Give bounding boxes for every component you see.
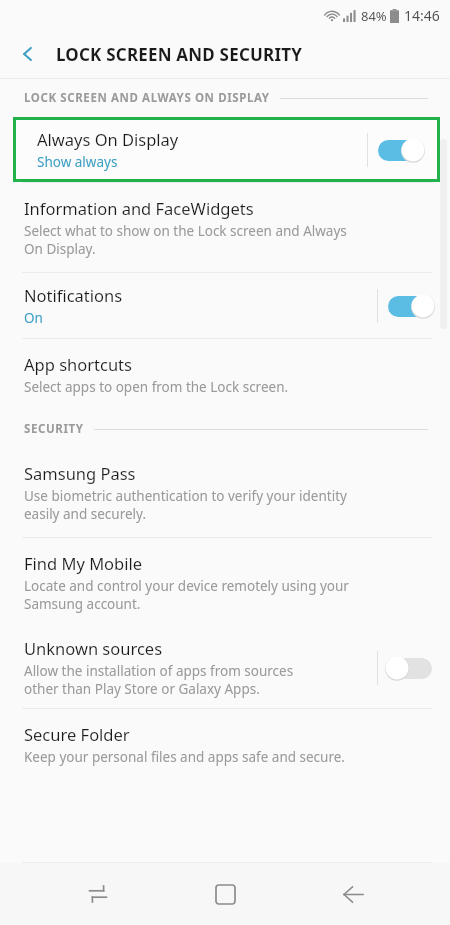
button[interactable]: Notifications [0,273,450,338]
button[interactable]: Back [323,864,383,924]
staticText: Select what to show on the Lock screen a… [24,222,347,258]
staticText: Always On Display [37,128,179,150]
staticText: Notifications [24,284,123,306]
button[interactable]: Secure Folder [0,709,450,780]
staticText: On [24,309,43,327]
staticText: Select apps to open from the Lock screen… [24,378,289,396]
button[interactable]: Notifications toggle [378,291,442,321]
staticText: Unknown sources [24,637,163,659]
button[interactable]: Always On Display [13,117,440,182]
staticText: Show always [37,153,118,171]
staticText: Keep your personal files and apps safe a… [24,748,345,766]
button[interactable]: Home [195,864,255,924]
button[interactable]: Always On Display toggle [368,135,432,165]
staticText: 84% [361,7,387,25]
staticText: SECURITY [24,421,84,437]
staticText: 14:46 [404,6,440,25]
staticText: Find My Mobile [24,552,143,574]
staticText: Samsung Pass [24,462,136,484]
staticText: Information and FaceWidgets [24,197,254,219]
button[interactable]: Unknown sources toggle [378,653,442,683]
button[interactable]: Samsung Pass [0,448,450,537]
staticText: Secure Folder [24,723,130,745]
button[interactable]: Recents [68,864,128,924]
staticText: Locate and control your device remotely … [24,577,349,613]
staticText: Allow the installation of apps from sour… [24,662,294,698]
staticText: App shortcuts [24,353,132,375]
button[interactable]: Information and FaceWidgets [0,183,450,272]
staticText: LOCK SCREEN AND ALWAYS ON DISPLAY [24,90,270,106]
button[interactable]: Find My Mobile [0,538,450,627]
staticText: LOCK SCREEN AND SECURITY [56,43,303,66]
button[interactable]: App shortcuts [0,339,450,410]
button[interactable]: Always On Display [13,117,440,182]
button[interactable]: Back [8,34,48,74]
staticText: Use biometric authentication to verify y… [24,487,347,523]
button[interactable]: Unknown sources [0,627,450,708]
